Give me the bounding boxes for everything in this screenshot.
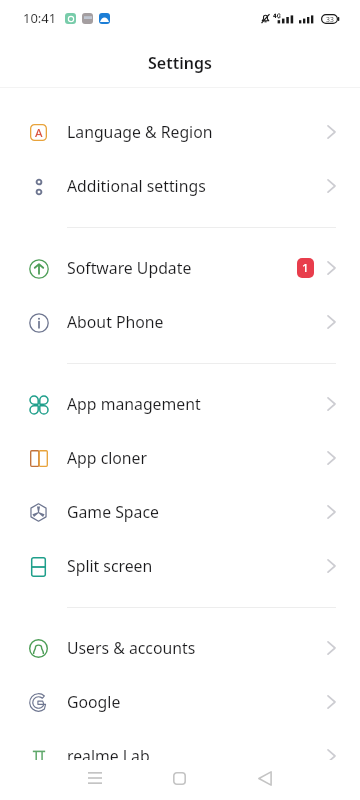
- button[interactable]: Users & accounts: [0, 621, 360, 675]
- button[interactable]: Split screen: [0, 539, 360, 593]
- button[interactable]: Back: [222, 758, 307, 798]
- button[interactable]: Google: [0, 675, 360, 729]
- staticText: Game Space: [67, 501, 159, 523]
- button[interactable]: Additional settings: [0, 159, 360, 213]
- button[interactable]: Recent apps: [52, 758, 137, 798]
- staticText: 33: [326, 15, 334, 24]
- button[interactable]: About Phone: [0, 295, 360, 349]
- staticText: App cloner: [67, 447, 148, 469]
- staticText: A: [35, 125, 43, 141]
- staticText: App management: [67, 393, 201, 415]
- staticText: 10:41: [23, 9, 57, 27]
- staticText: Google: [67, 691, 121, 713]
- button[interactable]: Home: [137, 758, 222, 798]
- staticText: Additional settings: [67, 175, 206, 197]
- staticText: 1: [302, 260, 309, 276]
- button[interactable]: realme Lab: [0, 729, 360, 783]
- staticText: Software Update: [67, 257, 192, 279]
- staticText: Split screen: [67, 555, 153, 577]
- staticText: Language & Region: [67, 121, 213, 143]
- button[interactable]: App management: [0, 377, 360, 431]
- button[interactable]: Game Space: [0, 485, 360, 539]
- staticText: About Phone: [67, 311, 164, 333]
- staticText: Users & accounts: [67, 637, 196, 659]
- button[interactable]: App cloner: [0, 431, 360, 485]
- staticText: realme Lab: [67, 745, 150, 767]
- button[interactable]: A: [0, 105, 360, 159]
- staticText: Settings: [148, 52, 212, 74]
- button[interactable]: Software Update: [0, 241, 360, 295]
